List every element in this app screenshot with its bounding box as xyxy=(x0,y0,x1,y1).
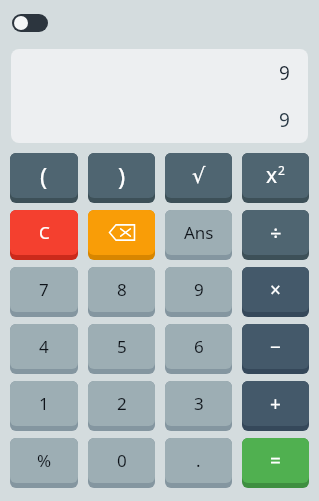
staticText: 1 xyxy=(39,392,49,415)
staticText: 3 xyxy=(194,392,204,415)
staticText: . xyxy=(196,449,201,472)
button[interactable]: Minus xyxy=(242,324,309,376)
staticText: = xyxy=(270,448,281,474)
staticText: 2 xyxy=(117,392,127,415)
staticText: ÷ xyxy=(270,219,282,246)
button[interactable]: Square xyxy=(242,153,309,205)
staticText: × xyxy=(270,277,281,303)
staticText: x xyxy=(266,161,278,190)
staticText: ( xyxy=(40,159,48,192)
staticText: + xyxy=(270,391,281,417)
button[interactable]: Ans xyxy=(165,210,232,262)
staticText: 9 xyxy=(279,107,290,133)
button[interactable]: 1 xyxy=(10,381,78,433)
button[interactable]: 0 xyxy=(88,438,155,490)
staticText: 9 xyxy=(194,278,204,301)
staticText: 8 xyxy=(117,278,127,301)
button[interactable]: 5 xyxy=(88,324,155,376)
button[interactable]: . xyxy=(165,438,232,490)
button[interactable]: % xyxy=(10,438,78,490)
staticText: − xyxy=(270,334,281,360)
button[interactable]: 9 xyxy=(11,49,308,143)
staticText: 6 xyxy=(194,335,204,358)
button[interactable]: 7 xyxy=(10,267,78,319)
staticText: C xyxy=(39,221,50,244)
button[interactable]: ) xyxy=(88,153,155,205)
button[interactable]: Multiply xyxy=(242,267,309,319)
button[interactable]: Equals xyxy=(242,438,309,490)
staticText: 9 xyxy=(279,60,290,86)
staticText: 4 xyxy=(39,335,49,358)
staticText: √ xyxy=(192,164,206,188)
button[interactable]: Toggle theme xyxy=(12,14,48,32)
button[interactable]: ( xyxy=(10,153,78,205)
button[interactable]: 9 xyxy=(165,267,232,319)
button[interactable]: 8 xyxy=(88,267,155,319)
button[interactable]: Square root xyxy=(165,153,232,205)
staticText: 2 xyxy=(278,162,285,178)
button[interactable]: Divide xyxy=(242,210,309,262)
staticText: % xyxy=(37,449,52,472)
button[interactable]: Backspace xyxy=(88,210,155,262)
button[interactable]: 4 xyxy=(10,324,78,376)
staticText: ) xyxy=(118,159,126,192)
staticText: 5 xyxy=(117,335,127,358)
button[interactable]: 3 xyxy=(165,381,232,433)
staticText: 7 xyxy=(39,278,49,301)
button[interactable]: Plus xyxy=(242,381,309,433)
button[interactable]: 6 xyxy=(165,324,232,376)
button[interactable]: 2 xyxy=(88,381,155,433)
staticText: Ans xyxy=(184,221,214,244)
button[interactable]: C xyxy=(10,210,78,262)
staticText: 0 xyxy=(117,449,127,472)
